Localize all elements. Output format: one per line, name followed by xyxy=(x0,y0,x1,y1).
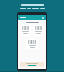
button[interactable] xyxy=(33,25,44,36)
button[interactable] xyxy=(26,39,38,49)
button[interactable]: App bar xyxy=(18,15,46,20)
button[interactable] xyxy=(20,62,44,67)
button[interactable] xyxy=(20,25,31,36)
